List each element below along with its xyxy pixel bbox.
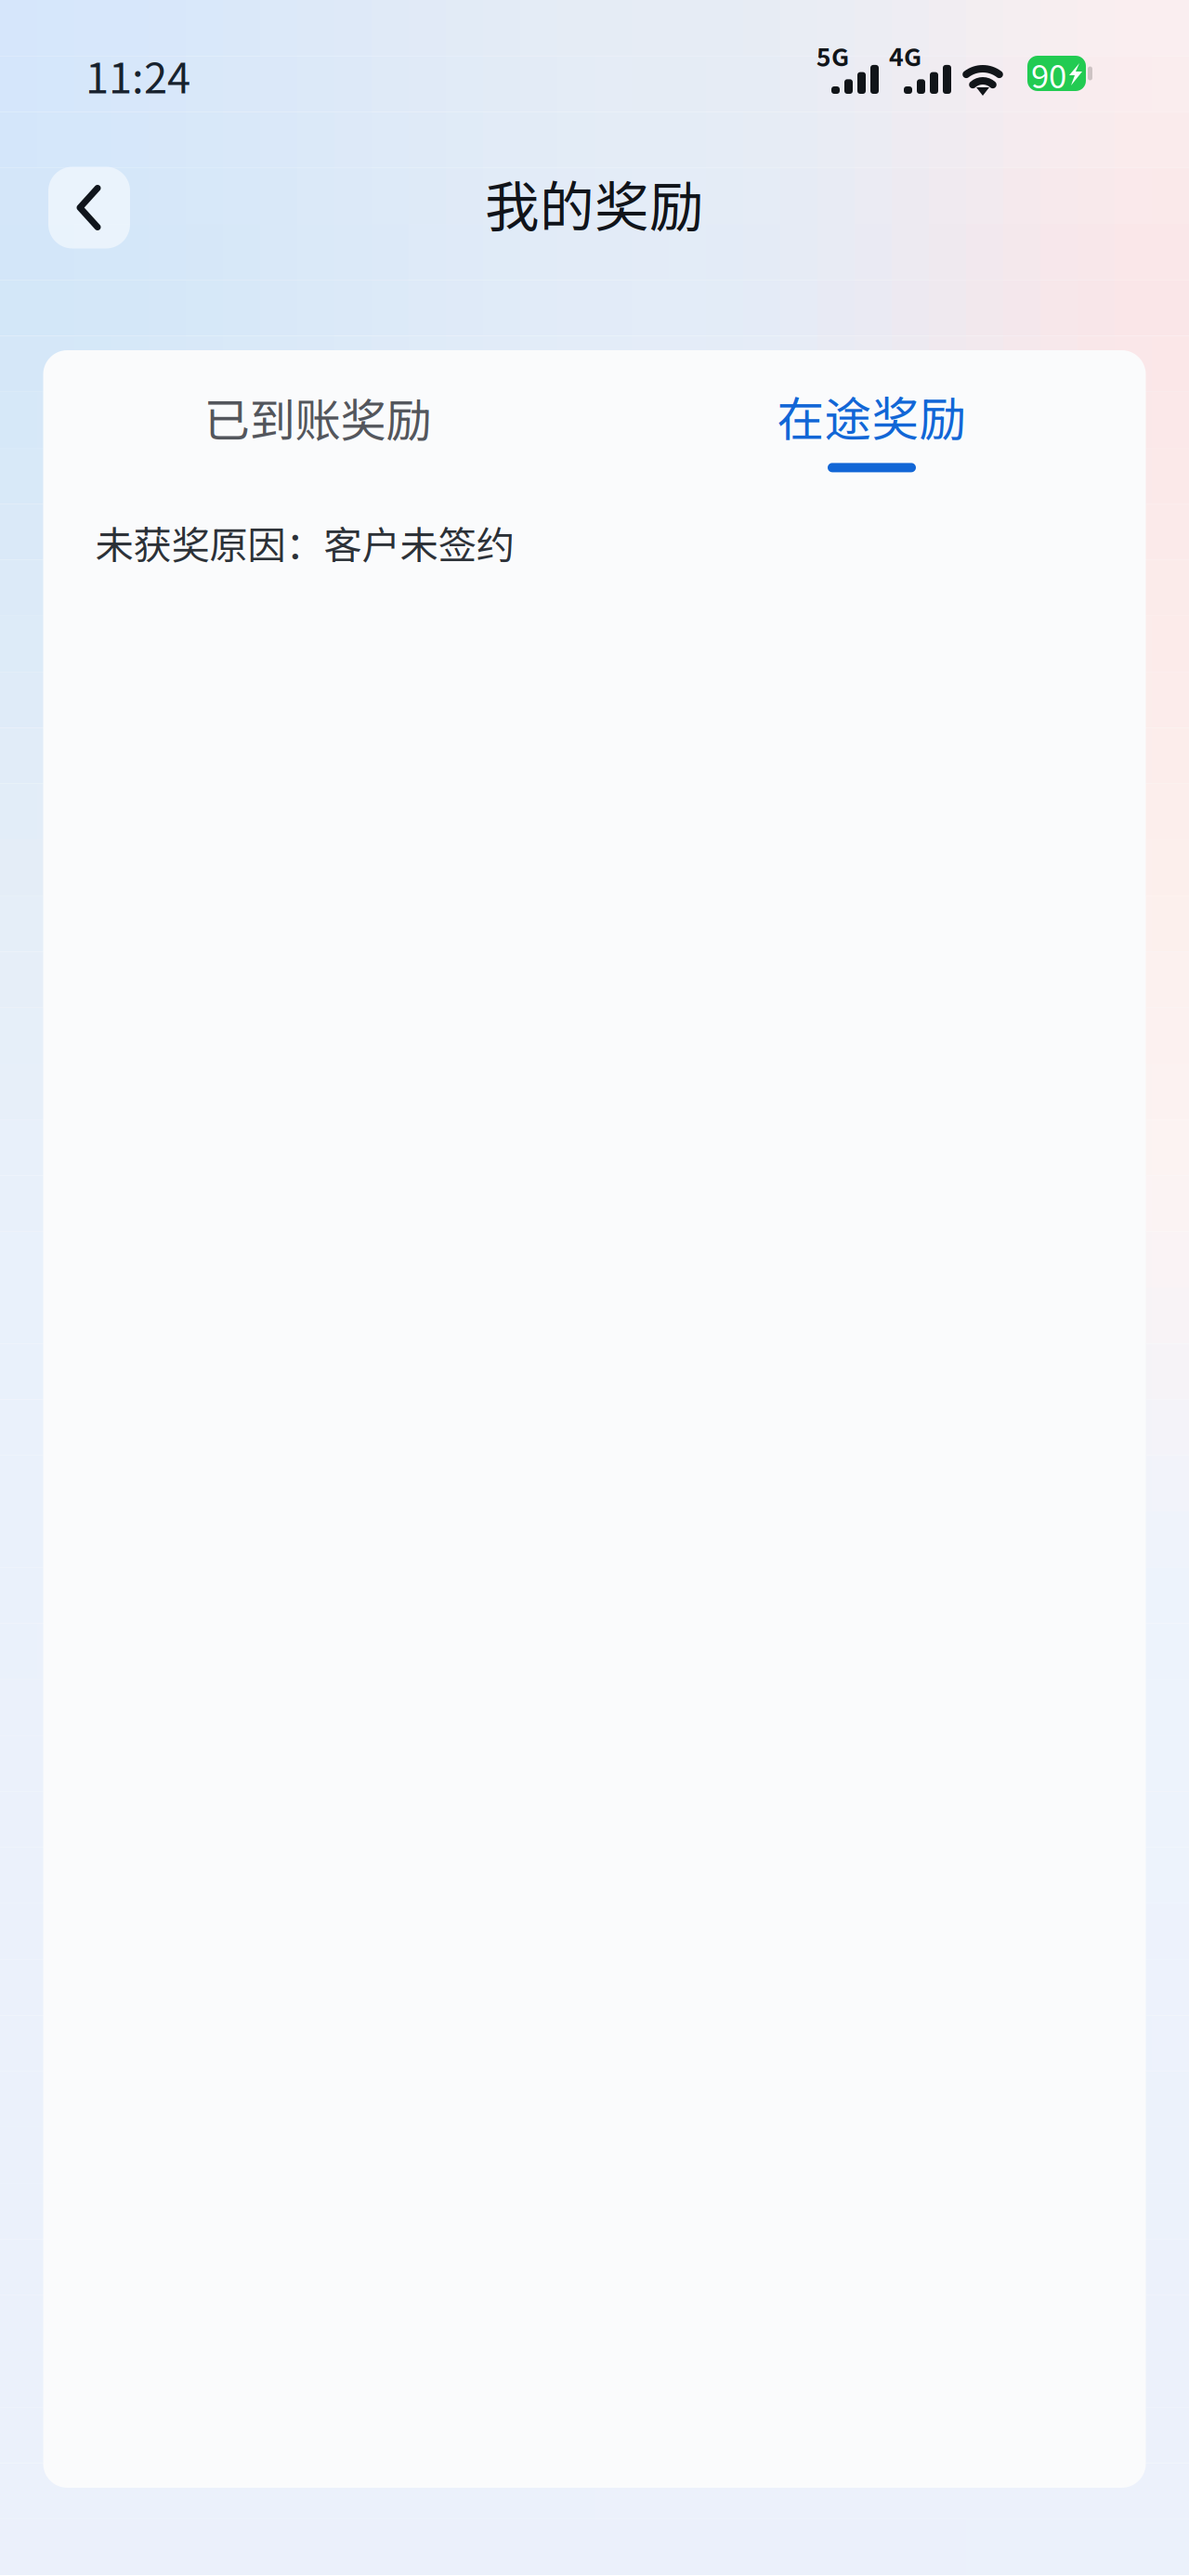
button[interactable]: 在途奖励 xyxy=(594,350,1146,486)
staticText: 我的奖励 xyxy=(485,163,704,242)
staticText: 11:24 xyxy=(85,45,190,106)
button[interactable]: 已到账奖励 xyxy=(43,350,594,486)
staticText: 已到账奖励 xyxy=(204,384,431,450)
staticText: 90 xyxy=(1031,51,1066,98)
button[interactable]: Back xyxy=(48,204,130,286)
staticText: 在途奖励 xyxy=(777,382,967,450)
staticText: 未获奖原因：客户未签约 xyxy=(95,515,514,570)
staticText: 4G xyxy=(889,38,921,73)
staticText: 5G xyxy=(817,38,849,73)
